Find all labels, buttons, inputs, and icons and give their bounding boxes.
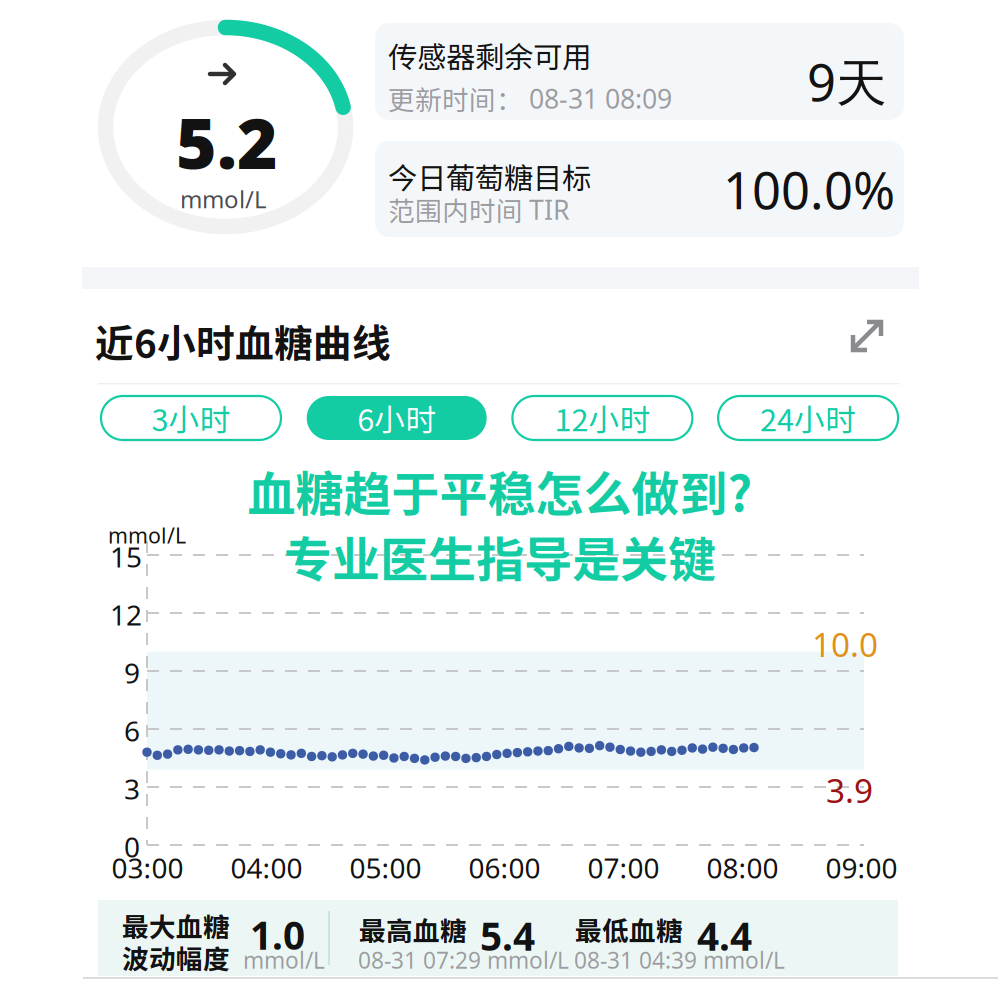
staticText: 今日葡萄糖目标 (388, 155, 591, 197)
staticText: 08-31 04:39 mmol/L (574, 945, 785, 975)
staticText: 最高血糖 (359, 910, 467, 949)
staticText: 12 (110, 596, 142, 633)
button[interactable]: 6小时 (307, 396, 487, 440)
staticText: 04:00 (230, 849, 302, 886)
staticText: 最低血糖 (575, 910, 683, 949)
button[interactable]: 3小时 (101, 396, 281, 440)
button[interactable]: 12小时 (512, 396, 692, 440)
staticText: 4.4 (697, 910, 752, 961)
staticText: 05:00 (349, 849, 421, 886)
staticText: 5.4 (480, 910, 535, 961)
staticText: 03:00 (111, 849, 183, 886)
staticText: 08-31 07:29 mmol/L (358, 945, 569, 975)
staticText: 血糖趋于平稳怎么做到? (247, 456, 752, 525)
staticText: mmol/L (108, 521, 186, 549)
staticText: 10.0 (812, 622, 878, 666)
staticText: 波动幅度 (122, 938, 230, 977)
staticText: 08-31 08:09 (529, 81, 672, 116)
staticText: 100.0% (723, 156, 895, 223)
staticText: 1.0 (250, 909, 305, 960)
staticText: 9 (124, 654, 140, 691)
staticText: 更新时间： (388, 79, 523, 118)
staticText: 3.9 (826, 768, 873, 812)
staticText: 07:00 (587, 849, 659, 886)
staticText: 传感器剩余可用 (388, 34, 591, 76)
staticText: 9天 (807, 48, 887, 115)
staticText: 09:00 (825, 849, 897, 886)
button[interactable]: 24小时 (718, 396, 898, 440)
staticText: 06:00 (468, 849, 540, 886)
staticText: 6小时 (357, 396, 436, 440)
staticText: 6 (124, 712, 140, 749)
staticText: mmol/L (180, 183, 267, 215)
staticText: 08:00 (706, 849, 778, 886)
staticText: mmol/L (243, 945, 325, 975)
button[interactable]: 今日葡萄糖目标 (375, 141, 904, 237)
staticText: 3 (124, 770, 140, 807)
button[interactable]: 全屏查看 (844, 312, 892, 360)
staticText: 最大血糖 (122, 906, 230, 945)
staticText: 专业医生指导是关键 (284, 521, 716, 591)
staticText: 24小时 (760, 396, 856, 440)
staticText: 0 (124, 828, 140, 865)
staticText: 3小时 (151, 396, 230, 440)
staticText: 15 (110, 538, 142, 575)
staticText: 5.2 (176, 96, 278, 188)
staticText: 范围内时间 (388, 190, 523, 229)
staticText: 近6小时血糖曲线 (95, 313, 391, 369)
staticText: 12小时 (554, 396, 650, 440)
button[interactable]: 传感器剩余可用 (375, 23, 904, 120)
staticText: TIR (529, 192, 570, 227)
